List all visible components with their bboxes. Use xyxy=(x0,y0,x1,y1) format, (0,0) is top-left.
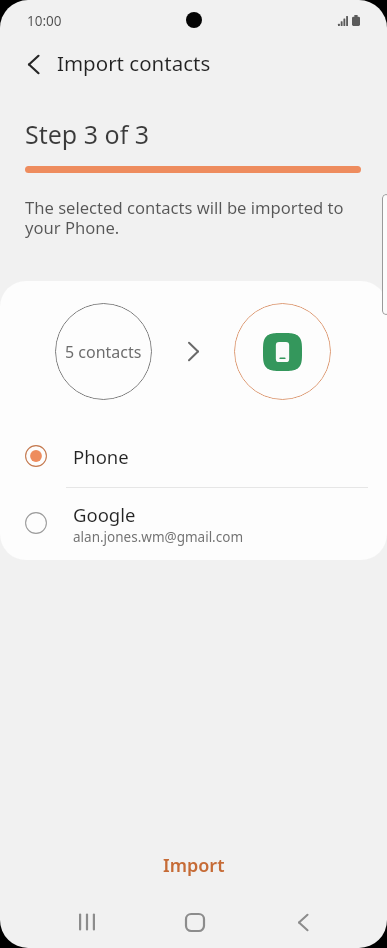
staticText: Step 3 of 3 xyxy=(25,117,150,151)
staticText: 5 contacts xyxy=(65,341,142,363)
staticText: Import contacts xyxy=(57,49,211,77)
staticText: alan.jones.wm@gmail.com xyxy=(73,528,244,546)
staticText: Import xyxy=(163,853,225,878)
staticText: Google xyxy=(73,502,136,527)
button[interactable]: Google xyxy=(0,488,387,558)
button[interactable]: Recent apps xyxy=(51,901,123,943)
staticText: 10:00 xyxy=(27,12,62,30)
staticText: Phone xyxy=(73,444,129,469)
button[interactable]: Import xyxy=(0,841,387,889)
staticText: The selected contacts will be imported t… xyxy=(25,196,344,239)
button[interactable]: Phone xyxy=(0,425,387,487)
button[interactable]: Back xyxy=(267,901,339,943)
button[interactable]: Back xyxy=(15,46,51,82)
button[interactable]: Home xyxy=(159,901,231,943)
